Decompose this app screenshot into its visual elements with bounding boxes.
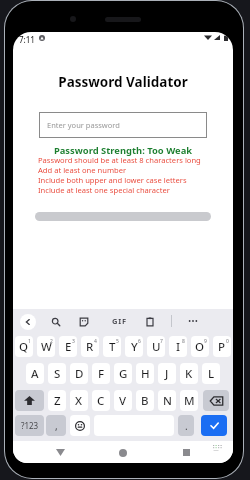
staticText: GIF: [112, 316, 128, 326]
button[interactable]: D: [70, 363, 88, 384]
button[interactable]: L: [202, 363, 220, 384]
staticText: I: [176, 339, 181, 355]
button[interactable]: J: [158, 363, 176, 384]
button[interactable]: More options: [185, 313, 201, 329]
staticText: Z: [54, 393, 61, 409]
staticText: Password Strength: Too Weak: [13, 144, 233, 157]
button[interactable]: F: [92, 363, 110, 384]
staticText: P: [218, 339, 226, 355]
staticText: W: [41, 339, 52, 355]
button[interactable]: P: [213, 336, 231, 357]
button[interactable]: Clipboard: [142, 314, 158, 330]
button[interactable]: Z: [48, 390, 66, 411]
button[interactable]: H: [136, 363, 154, 384]
button[interactable]: Recents: [178, 444, 194, 460]
staticText: N: [163, 393, 172, 409]
staticText: 3: [72, 338, 75, 345]
button[interactable]: O: [191, 336, 209, 357]
staticText: B: [141, 393, 149, 409]
button[interactable]: Stickers: [76, 314, 92, 330]
staticText: H: [141, 366, 150, 382]
button[interactable]: G: [114, 363, 132, 384]
button[interactable]: W: [37, 336, 55, 357]
button[interactable]: M: [180, 390, 198, 411]
staticText: 6: [138, 338, 141, 345]
staticText: Enter your password: [47, 120, 120, 130]
staticText: Password should be at least 8 characters…: [38, 155, 201, 165]
staticText: C: [97, 393, 105, 409]
staticText: Q: [19, 339, 29, 355]
staticText: F: [98, 366, 105, 382]
button[interactable]: ?123: [15, 415, 44, 436]
staticText: Password Validator: [13, 73, 233, 91]
staticText: U: [152, 339, 161, 355]
button[interactable]: N: [158, 390, 176, 411]
button[interactable]: .: [178, 415, 194, 436]
button[interactable]: S: [48, 363, 66, 384]
button[interactable]: Enter your password: [39, 112, 207, 138]
staticText: 5: [116, 338, 119, 345]
button[interactable]: GIF: [109, 313, 131, 329]
button[interactable]: Backspace: [203, 390, 229, 411]
staticText: J: [165, 366, 169, 382]
staticText: 9: [204, 338, 207, 345]
button[interactable]: R: [81, 336, 99, 357]
staticText: Add at least one number: [38, 165, 127, 175]
staticText: .: [185, 419, 188, 433]
staticText: O: [195, 339, 205, 355]
staticText: 8: [182, 338, 185, 345]
staticText: X: [75, 393, 83, 409]
staticText: K: [185, 366, 193, 382]
button[interactable]: V: [114, 390, 132, 411]
staticText: 4: [94, 338, 97, 345]
staticText: 0: [226, 338, 229, 345]
button[interactable]: I: [169, 336, 187, 357]
button[interactable]: K: [180, 363, 198, 384]
staticText: G: [119, 366, 128, 382]
staticText: 7:11: [19, 34, 35, 45]
button[interactable]: C: [92, 390, 110, 411]
button[interactable]: E: [59, 336, 77, 357]
staticText: 7: [160, 338, 163, 345]
staticText: E: [65, 339, 72, 355]
staticText: V: [119, 393, 127, 409]
staticText: ?123: [21, 420, 39, 431]
staticText: R: [86, 339, 94, 355]
staticText: 2: [50, 338, 53, 345]
staticText: D: [75, 366, 84, 382]
staticText: T: [109, 339, 116, 355]
button[interactable]: B: [136, 390, 154, 411]
button[interactable]: U: [147, 336, 165, 357]
button[interactable]: Y: [125, 336, 143, 357]
staticText: A: [31, 366, 39, 382]
button[interactable]: Back: [20, 314, 36, 330]
staticText: 1: [28, 338, 31, 345]
staticText: S: [54, 366, 61, 382]
button[interactable]: Enter: [201, 415, 227, 436]
staticText: M: [184, 393, 195, 409]
button[interactable]: A: [26, 363, 44, 384]
staticText: Include at least one special character: [38, 185, 170, 195]
staticText: Y: [131, 339, 138, 355]
staticText: Include both upper and lower case letter…: [38, 175, 187, 185]
staticText: L: [208, 366, 215, 382]
button[interactable]: X: [70, 390, 88, 411]
button[interactable]: T: [103, 336, 121, 357]
button[interactable]: Q: [15, 336, 33, 357]
button[interactable]: Emoji: [70, 415, 90, 436]
button[interactable]: ,: [46, 415, 66, 436]
button[interactable]: Shift: [15, 390, 44, 411]
button[interactable]: Search: [48, 314, 64, 330]
staticText: ,: [55, 419, 58, 433]
button[interactable]: Home: [115, 445, 131, 461]
button[interactable]: Back: [52, 444, 68, 460]
